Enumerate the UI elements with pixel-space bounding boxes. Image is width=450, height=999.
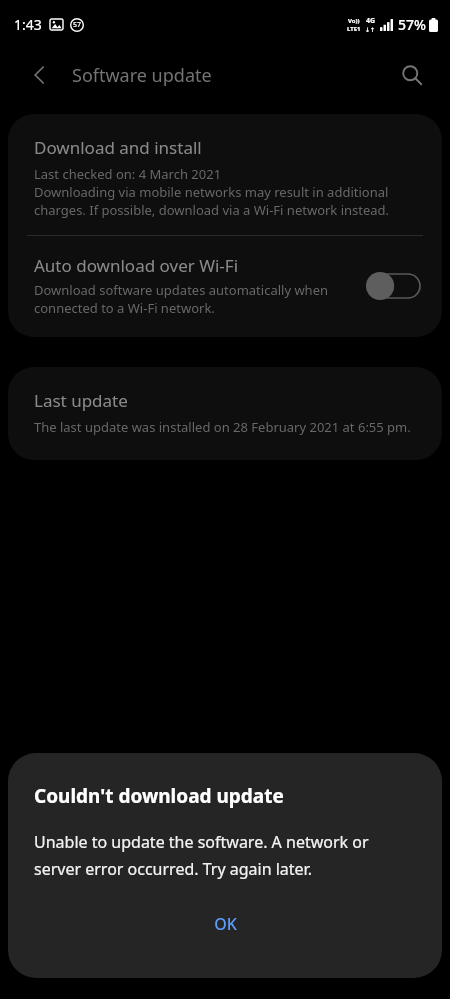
button[interactable]: Last update <box>8 367 442 460</box>
button[interactable]: Download and install <box>8 114 442 235</box>
staticText: 1:43 <box>14 15 42 34</box>
staticText: OK <box>214 913 237 935</box>
button[interactable]: Search <box>392 55 432 95</box>
button[interactable]: Auto download over Wi-Fi toggle, off <box>366 271 420 301</box>
staticText: LTE1 <box>347 25 361 33</box>
staticText: Last update <box>34 389 128 412</box>
button[interactable]: Back <box>22 57 58 93</box>
staticText: Auto download over Wi-Fi <box>34 254 239 277</box>
staticText: 57 <box>73 20 82 30</box>
staticText: Download and install <box>34 136 202 159</box>
staticText: Downloading via mobile networks may resu… <box>34 183 416 219</box>
staticText: ↓↑ <box>365 26 376 33</box>
staticText: The last update was installed on 28 Febr… <box>34 418 411 436</box>
staticText: 4G <box>366 16 376 26</box>
button[interactable]: OK <box>180 904 271 944</box>
staticText: Software update <box>72 63 212 88</box>
staticText: Couldn't download update <box>34 783 284 809</box>
staticText: Last checked on: 4 March 2021 <box>34 165 222 183</box>
staticText: 57% <box>398 15 426 34</box>
button[interactable]: Auto download over Wi-Fi <box>8 236 442 337</box>
staticText: Vo)) <box>348 17 360 25</box>
staticText: Unable to update the software. A network… <box>34 831 416 880</box>
staticText: Download software updates automatically … <box>34 281 356 317</box>
